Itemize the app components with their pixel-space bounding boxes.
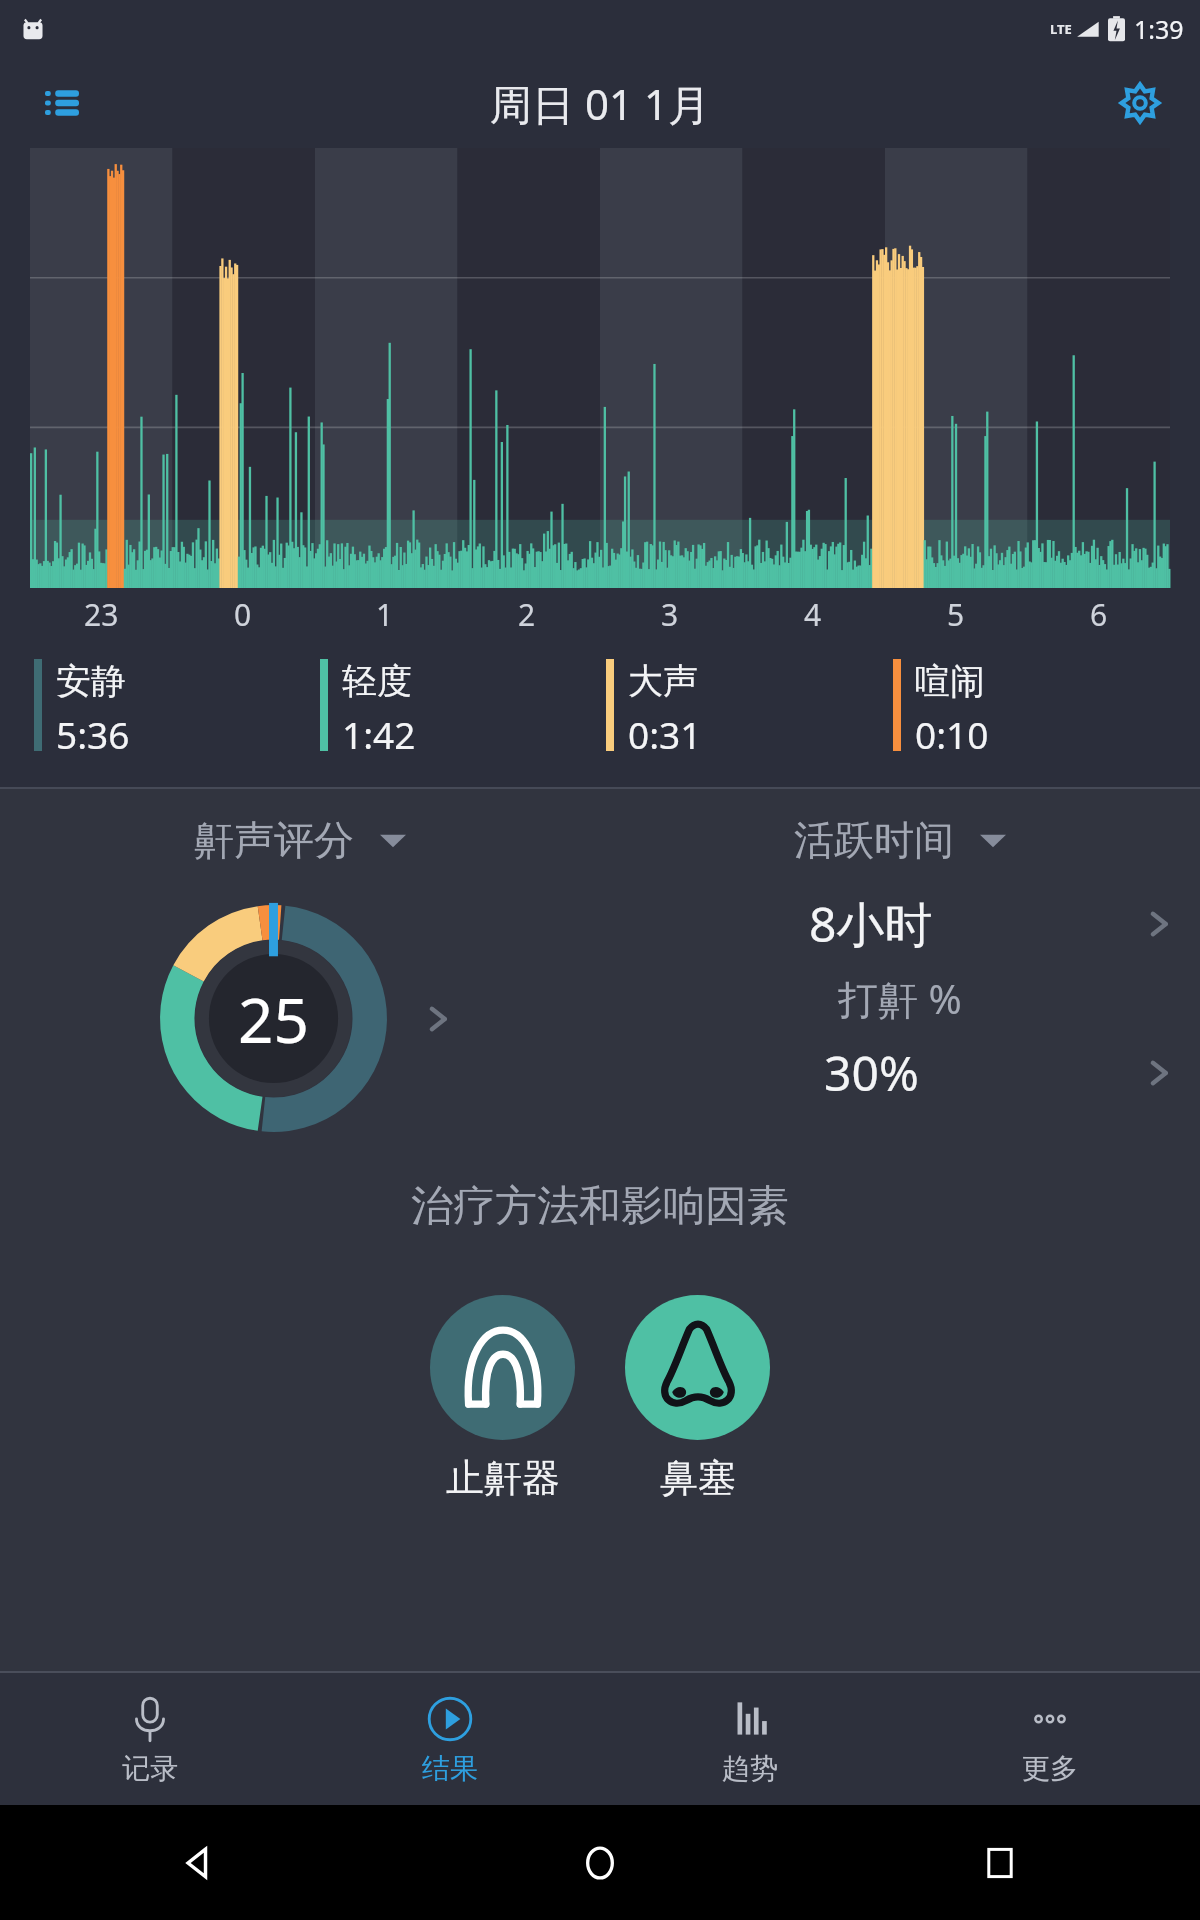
staticText: 活跃时间 (794, 815, 954, 865)
button[interactable]: Settings (1110, 73, 1170, 133)
button[interactable]: 安静 (34, 659, 320, 759)
staticText: 30% (824, 1040, 919, 1105)
button[interactable]: 更多 (900, 1673, 1200, 1805)
staticText: 2 (518, 594, 536, 635)
staticText: 更多 (1022, 1751, 1078, 1786)
staticText: 0:10 (915, 709, 989, 759)
button[interactable]: 8小时 (600, 891, 1200, 957)
button[interactable]: 记录 (0, 1673, 300, 1805)
staticText: 5 (947, 594, 965, 635)
staticText: 5:36 (56, 709, 130, 759)
staticText: 大声 (628, 659, 698, 703)
button[interactable]: 轻度 (320, 659, 606, 759)
staticText: 1:39 (1134, 12, 1184, 46)
staticText: 止鼾器 (446, 1454, 560, 1502)
staticText: 鼻塞 (660, 1454, 736, 1502)
other: Back (177, 1840, 223, 1886)
staticText: 轻度 (342, 659, 412, 703)
button[interactable]: 活跃时间 (794, 815, 1006, 865)
staticText: LTE (1050, 20, 1072, 38)
button[interactable]: 止鼾器 (426, 1291, 579, 1506)
other: Home (578, 1841, 622, 1885)
staticText: 鼾声评分 (194, 815, 354, 865)
staticText: 0:31 (628, 709, 702, 759)
staticText: 喧闹 (915, 659, 985, 703)
staticText: 安静 (56, 659, 126, 703)
staticText: 23 (84, 594, 119, 635)
staticText: 25 (238, 977, 309, 1061)
staticText: 趋势 (722, 1751, 778, 1786)
staticText: 4 (804, 594, 822, 635)
staticText: 结果 (422, 1751, 478, 1786)
button[interactable]: 30% (600, 1040, 1200, 1105)
staticText: 3 (661, 594, 679, 635)
staticText: 6 (1090, 594, 1108, 635)
other: Recents (980, 1843, 1020, 1883)
button[interactable]: 趋势 (600, 1673, 900, 1805)
button[interactable]: 鼻塞 (621, 1291, 774, 1506)
button[interactable]: 25 (146, 891, 455, 1146)
staticText: 记录 (122, 1751, 178, 1786)
button[interactable]: 结果 (300, 1673, 600, 1805)
button[interactable]: 鼾声评分 (194, 815, 406, 865)
button[interactable]: 喧闹 (893, 659, 1180, 759)
button[interactable]: 大声 (606, 659, 893, 759)
staticText: 周日 01 1月 (490, 75, 710, 132)
staticText: 打鼾 % (838, 971, 962, 1026)
staticText: 8小时 (809, 891, 933, 957)
staticText: 治疗方法和影响因素 (411, 1180, 789, 1233)
staticText: 0 (234, 594, 252, 635)
button[interactable]: List (34, 75, 90, 131)
staticText: 1 (376, 594, 394, 635)
staticText: 1:42 (342, 709, 416, 759)
